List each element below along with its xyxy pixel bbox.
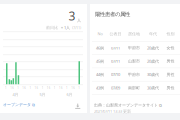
staticText: 年代 — [149, 31, 157, 36]
staticText: 07/10 — [111, 72, 120, 77]
staticText: 南部町 — [128, 85, 140, 90]
button[interactable]: 出典：山梨県オープンデータサイト ⧉ — [90, 103, 162, 108]
staticText: 2021/07/11 13:33 更新 — [94, 109, 131, 114]
staticText: 20歳代 — [147, 59, 159, 64]
staticText: 45例 — [96, 59, 104, 64]
staticText: 1 — [5, 86, 7, 90]
staticText: 1 — [42, 86, 44, 90]
staticText: 3 — [68, 8, 75, 24]
staticText: 30歳代 — [147, 72, 159, 77]
staticText: 5月 — [39, 92, 45, 97]
staticText: 30歳代 — [147, 85, 159, 90]
staticText: 男性 — [166, 85, 174, 90]
staticText: オープンデータ ⧉ — [3, 102, 35, 107]
staticText: 山梨市 — [128, 59, 140, 64]
staticText: 16 — [47, 86, 51, 90]
staticText: 1 — [29, 86, 31, 90]
staticText: 陽性患者の属性 — [95, 11, 130, 18]
staticText: 出典：山梨県オープンデータサイト ⧉ — [94, 103, 162, 108]
staticText: 16 — [10, 86, 14, 90]
staticText: 甲府市 — [128, 45, 140, 50]
staticText: 性別 — [166, 31, 174, 36]
staticText: ＋1人 — [60, 25, 70, 30]
staticText: 43例 — [96, 85, 104, 90]
staticText: 4月 — [12, 92, 18, 97]
staticText: 07/09 — [111, 85, 120, 90]
staticText: 44例 — [96, 72, 104, 77]
staticText: 人 — [77, 18, 81, 23]
staticText: 男性 — [166, 72, 174, 77]
staticText: 前日比 — [46, 25, 58, 30]
staticText: 1 — [78, 86, 80, 90]
staticText: 公表日 — [109, 31, 121, 36]
staticText: 16 — [59, 86, 63, 90]
staticText: 1 — [54, 86, 56, 90]
staticText: 甲府市 — [128, 72, 140, 77]
staticText: No — [97, 31, 102, 36]
staticText: 男性 — [166, 59, 174, 64]
staticText: 16 — [22, 86, 26, 90]
staticText: 46例 — [96, 45, 104, 51]
staticText: (7/11) — [72, 25, 81, 30]
staticText: 16 — [34, 86, 38, 90]
staticText: 16 — [71, 86, 75, 90]
button[interactable]: Download chart — [75, 97, 87, 109]
staticText: 07/11 — [111, 45, 120, 51]
staticText: 1 — [66, 86, 68, 90]
staticText: 20歳代 — [147, 45, 159, 51]
staticText: 女性 — [166, 45, 174, 50]
button[interactable]: オープンデータ ⧉ — [0, 99, 35, 107]
staticText: 居住地 — [128, 31, 140, 36]
staticText: 1 — [17, 86, 19, 90]
staticText: 6月 — [66, 92, 72, 97]
staticText: 07/11 — [111, 59, 120, 64]
